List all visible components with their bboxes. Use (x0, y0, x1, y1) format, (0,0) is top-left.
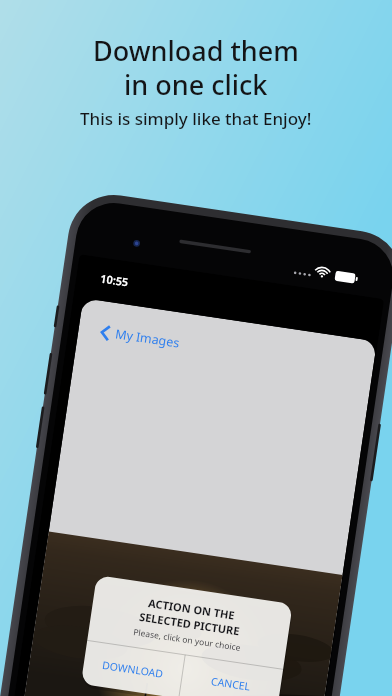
button[interactable]: Download them in one click promo (0, 0, 392, 696)
